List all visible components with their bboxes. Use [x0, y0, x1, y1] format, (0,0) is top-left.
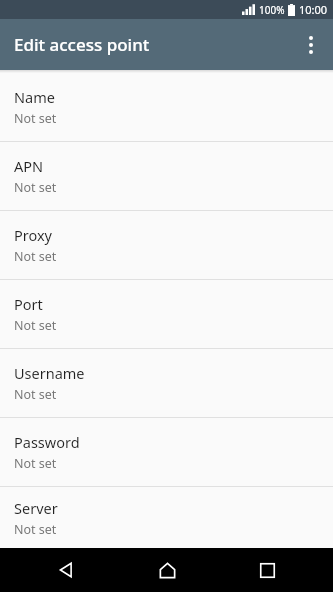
button[interactable]: Home	[132, 548, 202, 592]
staticText: Proxy	[14, 225, 53, 245]
staticText: Not set	[14, 455, 57, 472]
button[interactable]: Proxy	[0, 211, 333, 279]
staticText: Server	[14, 498, 58, 518]
button[interactable]: Recent apps	[232, 548, 302, 592]
staticText: Not set	[14, 521, 57, 538]
staticText: Not set	[14, 179, 57, 196]
staticText: APN	[14, 156, 44, 176]
staticText: Not set	[14, 110, 57, 127]
button[interactable]: Username	[0, 349, 333, 417]
staticText: 10:00	[299, 2, 328, 17]
button[interactable]: Password	[0, 418, 333, 486]
staticText: Not set	[14, 248, 57, 265]
staticText: Edit access point	[14, 33, 150, 56]
button[interactable]: Back	[31, 548, 101, 592]
staticText: Not set	[14, 386, 57, 403]
staticText: Username	[14, 363, 85, 383]
staticText: 100%	[259, 3, 285, 17]
staticText: Name	[14, 87, 55, 107]
staticText: Not set	[14, 317, 57, 334]
staticText: Port	[14, 294, 43, 314]
staticText: Password	[14, 432, 80, 452]
button[interactable]: Name	[0, 73, 333, 141]
button[interactable]: Port	[0, 280, 333, 348]
button[interactable]: APN	[0, 142, 333, 210]
button[interactable]: Server	[0, 487, 333, 548]
button[interactable]: More options	[289, 23, 333, 67]
